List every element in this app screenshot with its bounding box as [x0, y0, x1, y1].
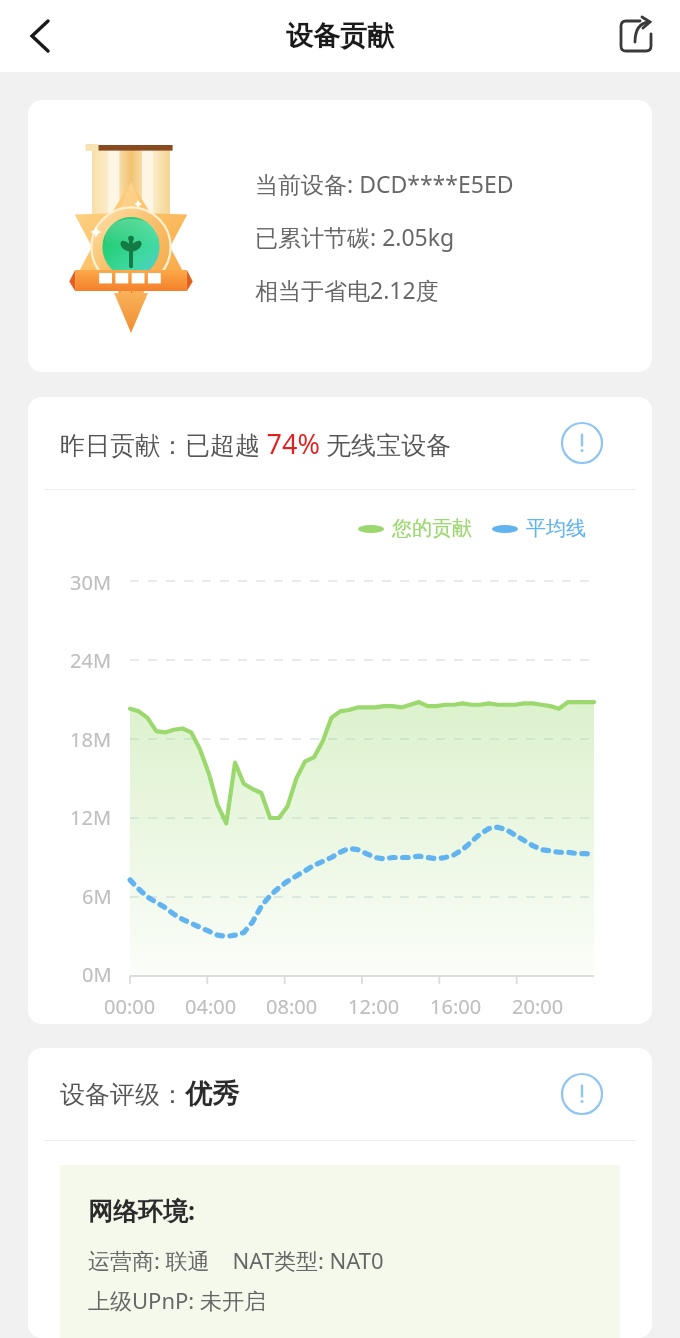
button[interactable]: Info: [560, 421, 604, 465]
staticText: 30M: [70, 569, 112, 596]
staticText: 20:00: [512, 993, 564, 1020]
button[interactable]: Back: [12, 8, 68, 64]
staticText: 00:00: [104, 993, 156, 1020]
staticText: 相当于省电2.12度: [255, 274, 439, 305]
staticText: 6M: [82, 883, 112, 910]
staticText: 0M: [82, 961, 112, 988]
staticText: 设备评级：: [60, 1079, 185, 1110]
staticText: 昨日贡献：已超越 74% 无线宝设备: [60, 425, 452, 462]
staticText: 网络环境:: [88, 1193, 196, 1227]
staticText: 18M: [70, 726, 112, 753]
staticText: 平均线: [526, 516, 586, 541]
staticText: 优秀: [185, 1077, 239, 1111]
button[interactable]: Share: [608, 8, 664, 64]
button[interactable]: 当前设备: DCD****E5ED: [28, 100, 652, 372]
staticText: 已累计节碳: 2.05kg: [255, 221, 455, 252]
staticText: 08:00: [266, 993, 318, 1020]
staticText: 运营商: 联通 NAT类型: NAT0: [88, 1245, 384, 1275]
staticText: 12:00: [348, 993, 400, 1020]
staticText: 上级UPnP: 未开启: [88, 1285, 266, 1315]
button[interactable]: Rating info: [560, 1072, 604, 1116]
staticText: 16:00: [430, 993, 482, 1020]
staticText: 12M: [70, 804, 112, 831]
staticText: 04:00: [185, 993, 237, 1020]
staticText: 您的贡献: [392, 516, 472, 541]
staticText: 设备贡献: [286, 19, 394, 53]
staticText: 当前设备: DCD****E5ED: [255, 168, 514, 199]
staticText: 24M: [70, 647, 112, 674]
